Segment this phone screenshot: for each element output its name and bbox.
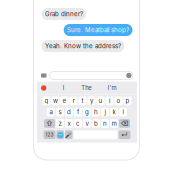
- button[interactable]: t: [78, 96, 86, 105]
- staticText: o: [116, 97, 120, 104]
- button[interactable]: p: [123, 96, 131, 105]
- button[interactable]: ⇧: [44, 119, 55, 128]
- button[interactable]: u: [96, 96, 104, 105]
- staticText: 🎤: [65, 132, 72, 138]
- button[interactable]: Send: [126, 73, 132, 78]
- button[interactable]: m: [110, 119, 118, 128]
- button[interactable]: I: [63, 84, 65, 91]
- staticText: I: [63, 84, 65, 91]
- staticText: Sure. Meatball shop?: [67, 26, 129, 34]
- button[interactable]: n: [101, 119, 109, 128]
- staticText: The: [81, 84, 91, 91]
- button[interactable]: i: [105, 96, 113, 105]
- button[interactable]: l: [119, 108, 127, 116]
- staticText: u: [98, 97, 102, 104]
- staticText: z: [58, 120, 61, 127]
- button[interactable]: w: [51, 96, 59, 105]
- button[interactable]: g: [83, 108, 91, 116]
- button[interactable]: y: [87, 96, 95, 105]
- staticText: m: [111, 120, 116, 127]
- button[interactable]: h: [92, 108, 100, 116]
- staticText: t: [81, 97, 83, 104]
- staticText: f: [77, 108, 79, 116]
- button[interactable]: The: [81, 84, 91, 91]
- button[interactable]: e: [60, 96, 68, 105]
- button[interactable]: z: [56, 119, 64, 128]
- staticText: i: [109, 97, 110, 104]
- staticText: k: [112, 108, 115, 116]
- button[interactable]: x: [65, 119, 73, 128]
- button[interactable]: r: [69, 96, 77, 105]
- staticText: j: [104, 108, 105, 116]
- staticText: r: [72, 97, 74, 104]
- button[interactable]: 🎤: [65, 130, 72, 139]
- button[interactable]: [73, 130, 117, 139]
- staticText: p: [125, 97, 129, 104]
- button[interactable]: b: [92, 119, 100, 128]
- staticText: v: [85, 120, 88, 127]
- button[interactable]: 123: [43, 130, 55, 139]
- button[interactable]: a: [47, 108, 55, 116]
- staticText: l: [122, 108, 123, 116]
- button[interactable]: s: [56, 108, 64, 116]
- staticText: x: [67, 120, 70, 127]
- staticText: q: [44, 97, 48, 104]
- button[interactable]: f: [74, 108, 82, 116]
- staticText: e: [62, 97, 66, 104]
- button[interactable]: ⌫: [119, 119, 130, 128]
- staticText: y: [90, 97, 93, 104]
- staticText: 🌐: [57, 132, 64, 138]
- button[interactable]: d: [65, 108, 73, 116]
- button[interactable]: k: [110, 108, 118, 116]
- button[interactable]: ↵: [118, 130, 130, 139]
- staticText: g: [85, 108, 89, 116]
- staticText: I'm: [108, 84, 117, 91]
- staticText: h: [94, 108, 98, 116]
- staticText: s: [58, 108, 61, 116]
- button[interactable]: 🌐: [56, 130, 64, 139]
- staticText: c: [76, 120, 80, 127]
- staticText: n: [103, 120, 107, 127]
- staticText: ⌫: [120, 119, 128, 127]
- staticText: w: [53, 97, 58, 104]
- button[interactable]: v: [83, 119, 91, 128]
- staticText: b: [94, 120, 98, 127]
- staticText: ↵: [121, 131, 128, 139]
- staticText: a: [49, 108, 52, 116]
- button[interactable]: q: [42, 96, 50, 105]
- button[interactable]: Google: [41, 85, 46, 91]
- staticText: Grab dinner?: [45, 10, 83, 18]
- staticText: Yeah. Know the address?: [45, 42, 121, 50]
- button[interactable]: c: [74, 119, 82, 128]
- button[interactable]: Camera: [41, 73, 46, 78]
- staticText: d: [67, 108, 71, 116]
- button[interactable]: o: [114, 96, 122, 105]
- staticText: 123: [45, 132, 53, 138]
- button[interactable]: I'm: [108, 84, 117, 91]
- button[interactable]: j: [101, 108, 109, 116]
- staticText: ⇧: [46, 119, 53, 127]
